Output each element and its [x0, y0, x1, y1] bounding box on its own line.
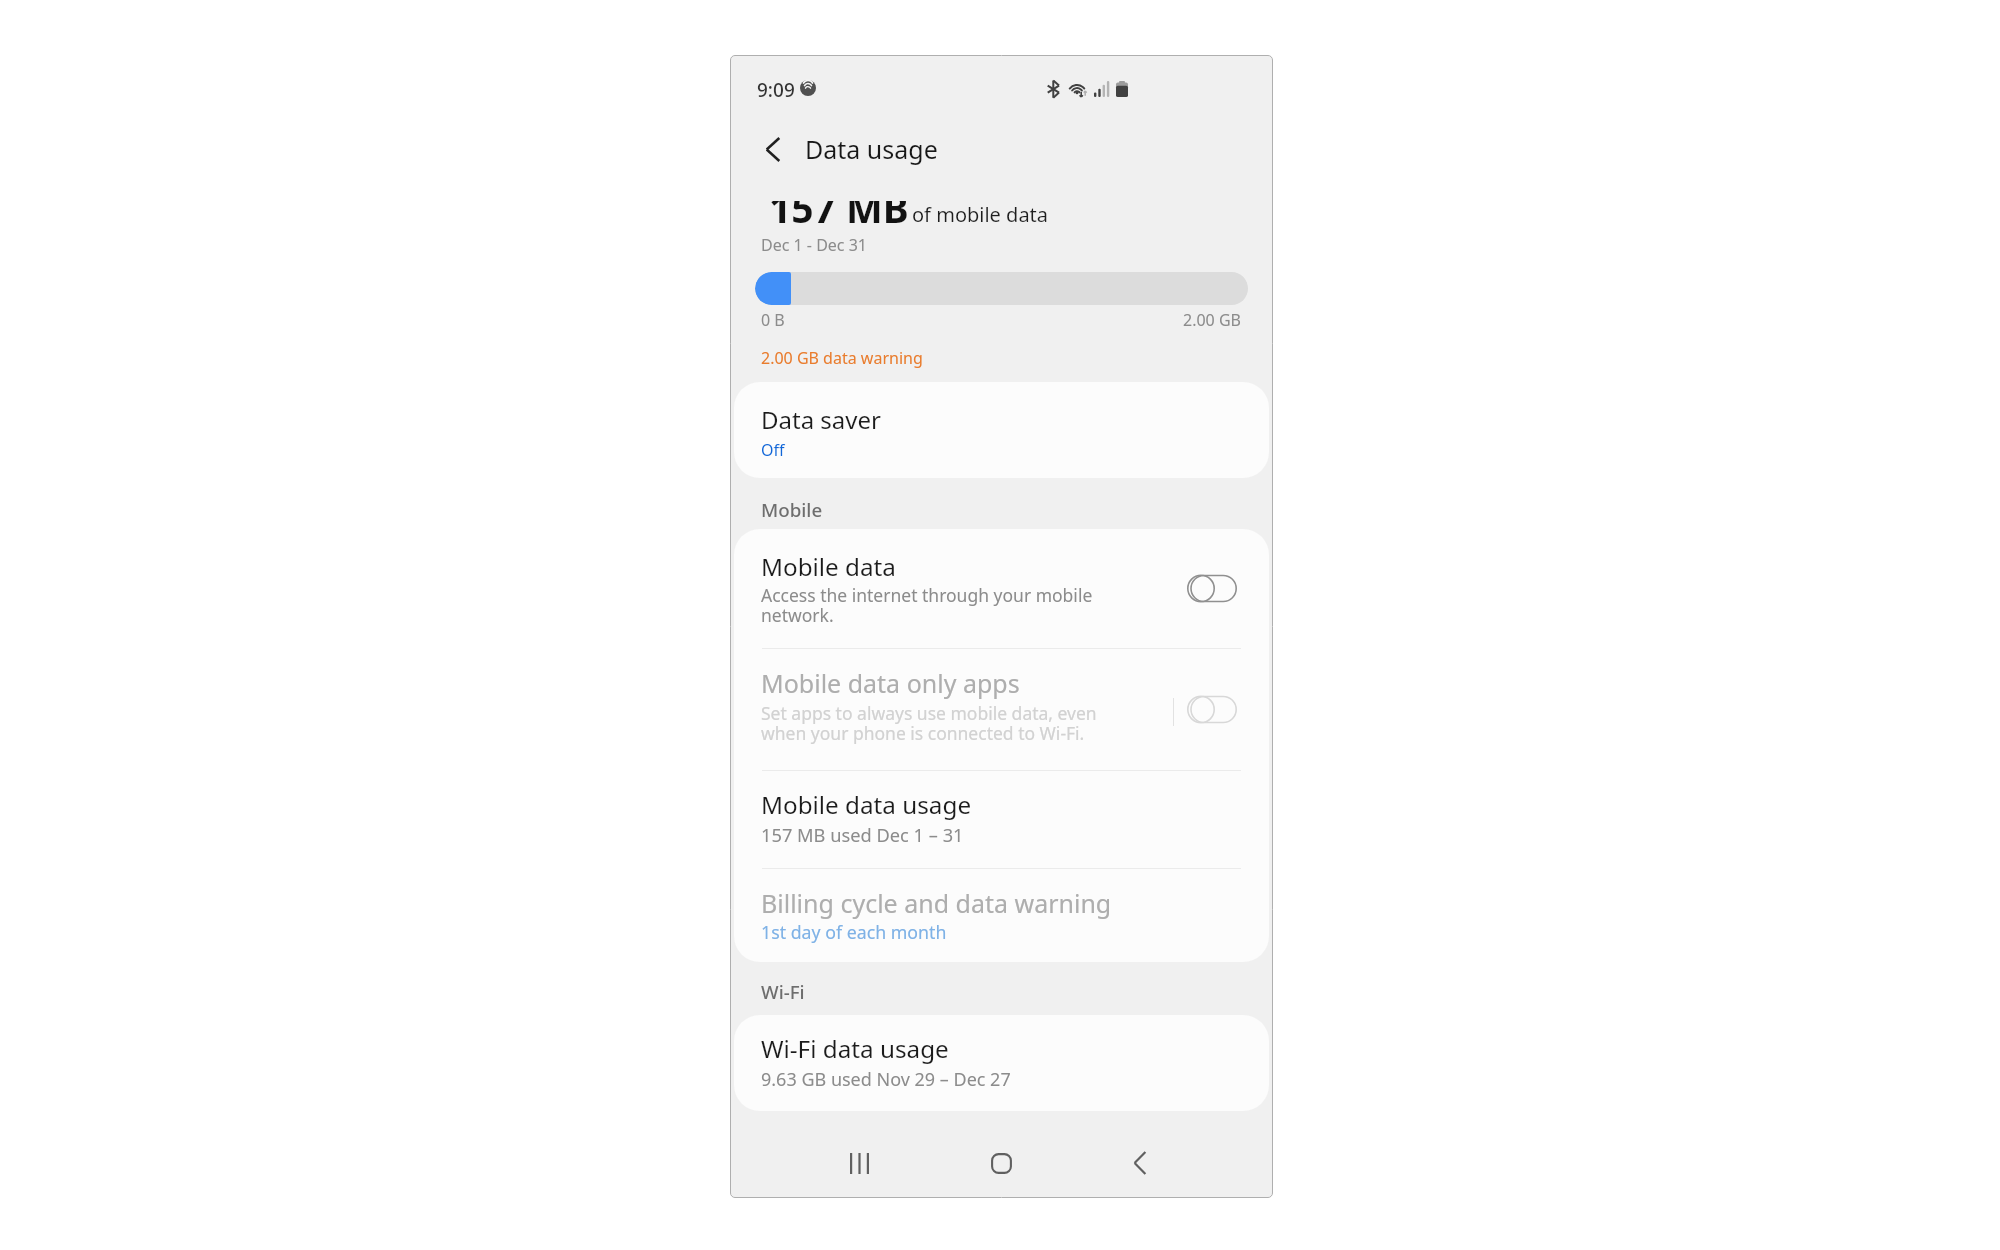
staticText: Data saver — [761, 403, 881, 436]
button[interactable]: Navigate up — [751, 127, 795, 171]
staticText: 1st day of each month — [761, 920, 947, 944]
button[interactable]: Wi-Fi data usage — [734, 1015, 1269, 1111]
staticText: Data usage — [805, 132, 938, 166]
staticText: Wi-Fi data usage — [761, 1032, 949, 1065]
staticText: Set apps to always use mobile data, even… — [761, 701, 1111, 745]
staticText: 9:09 — [757, 77, 795, 103]
staticText: Wi-Fi — [761, 979, 805, 1005]
staticText: Mobile — [761, 497, 823, 523]
staticText: 2.00 GB — [1183, 309, 1241, 331]
staticText: Mobile data usage — [761, 788, 972, 821]
button[interactable]: Data saver — [734, 382, 1269, 478]
staticText: 157 MB — [769, 181, 909, 234]
button[interactable]: Recent apps — [821, 1128, 897, 1197]
staticText: Off — [761, 439, 785, 461]
button[interactable]: Billing cycle and data warning — [734, 868, 1269, 962]
button[interactable]: Home — [963, 1128, 1039, 1197]
button[interactable]: Mobile data usage — [734, 770, 1269, 867]
staticText: Mobile data — [761, 550, 896, 583]
staticText: of mobile data — [912, 201, 1049, 228]
button[interactable]: Back — [1102, 1128, 1178, 1197]
button[interactable]: Mobile data only apps — [734, 649, 1269, 769]
staticText: 9.63 GB used Nov 29 – Dec 27 — [761, 1067, 1011, 1092]
staticText: Dec 1 - Dec 31 — [761, 234, 868, 256]
staticText: 2.00 GB data warning — [761, 347, 923, 369]
staticText: 0 B — [761, 309, 785, 331]
staticText: Billing cycle and data warning — [761, 886, 1112, 920]
staticText: Access the internet through your mobile … — [761, 583, 1106, 627]
button[interactable]: Mobile data — [734, 529, 1269, 648]
staticText: Mobile data only apps — [761, 666, 1020, 700]
staticText: 157 MB used Dec 1 – 31 — [761, 822, 964, 847]
